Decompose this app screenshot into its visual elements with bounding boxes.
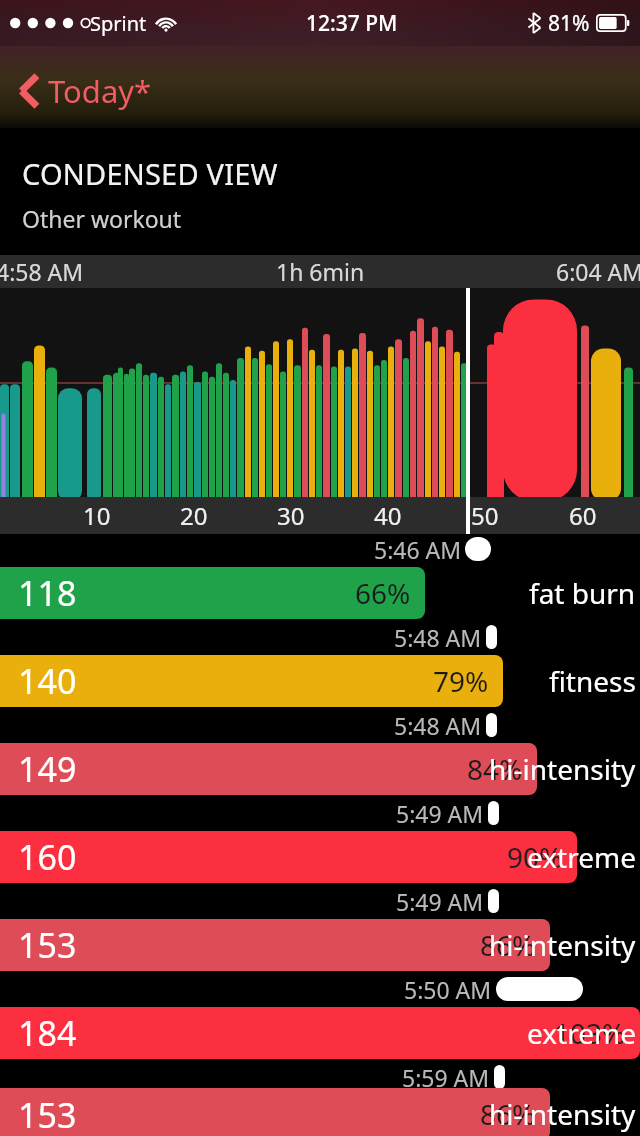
staticText: Today* — [48, 70, 152, 112]
staticText: 5:49 AM — [396, 886, 484, 916]
staticText: Sprint — [90, 10, 147, 37]
staticText: extreme — [527, 1014, 636, 1052]
staticText: 66% — [355, 574, 411, 612]
staticText: 84% — [467, 750, 523, 788]
staticText: 90% — [507, 838, 563, 876]
staticText: 79% — [433, 662, 489, 700]
button[interactable]: 5:50 AM — [0, 974, 640, 1062]
staticText: fat burn — [529, 574, 636, 612]
staticText: Other workout — [22, 203, 182, 234]
staticText: 86% — [480, 926, 536, 964]
staticText: 4:58 AM — [0, 256, 84, 287]
staticText: 153 — [18, 1092, 77, 1136]
staticText: 118 — [18, 570, 77, 616]
button[interactable]: 5:59 AM — [0, 1062, 640, 1136]
staticText: 81% — [548, 9, 590, 38]
button[interactable]: 5:49 AM — [0, 886, 640, 974]
button[interactable]: 5:48 AM — [0, 622, 640, 710]
staticText: 5:50 AM — [404, 974, 492, 1004]
staticText: 184 — [18, 1010, 77, 1056]
staticText: 160 — [18, 834, 77, 880]
staticText: 140 — [18, 658, 77, 704]
button[interactable]: Today* — [12, 66, 158, 116]
staticText: 5:48 AM — [394, 622, 482, 652]
staticText: 149 — [18, 746, 77, 792]
staticText: hi-intensity — [489, 926, 636, 964]
staticText: 5:46 AM — [374, 534, 462, 564]
button[interactable]: 5:46 AM — [0, 534, 640, 622]
staticText: 86% — [480, 1095, 536, 1133]
button[interactable]: 5:48 AM — [0, 710, 640, 798]
staticText: 40 — [374, 499, 402, 532]
staticText: 6:04 AM — [556, 256, 640, 287]
staticText: 10 — [83, 499, 111, 532]
staticText: 50 — [471, 499, 499, 532]
staticText: 5:59 AM — [402, 1062, 490, 1092]
staticText: 30 — [277, 499, 305, 532]
staticText: hi-intensity — [489, 750, 636, 788]
staticText: 60 — [569, 499, 597, 532]
button[interactable]: 5:49 AM — [0, 798, 640, 886]
staticText: CONDENSED VIEW — [22, 154, 278, 193]
staticText: 5:48 AM — [394, 710, 482, 740]
staticText: 20 — [180, 499, 208, 532]
staticText: 1h 6min — [276, 256, 365, 287]
staticText: hi-intensity — [489, 1095, 636, 1133]
staticText: 12:37 PM — [306, 9, 398, 38]
staticText: 153 — [18, 922, 77, 968]
staticText: extreme — [527, 838, 636, 876]
staticText: 5:49 AM — [396, 798, 484, 828]
staticText: 103% — [554, 1014, 626, 1052]
staticText: fitness — [549, 662, 636, 700]
